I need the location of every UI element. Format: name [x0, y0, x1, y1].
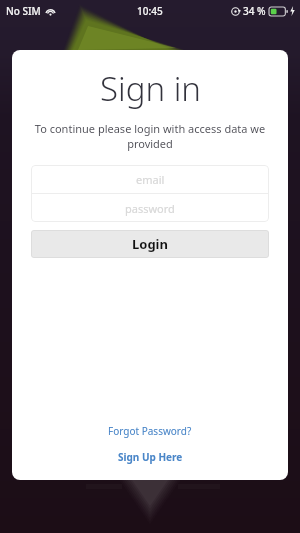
staticText: Sign Up Here: [118, 450, 183, 464]
button[interactable]: Forgot Password?: [98, 420, 202, 442]
button[interactable]: Login: [31, 230, 269, 258]
staticText: 34 %: [243, 4, 266, 18]
staticText: Forgot Password?: [108, 424, 192, 438]
staticText: password: [125, 201, 175, 216]
staticText: email: [136, 172, 165, 187]
button[interactable]: Sign Up Here: [108, 446, 193, 468]
staticText: No SIM: [6, 4, 41, 18]
staticText: Sign in: [100, 66, 201, 111]
staticText: 10:45: [137, 4, 163, 18]
button[interactable]: password: [31, 194, 269, 222]
staticText: Login: [132, 235, 168, 253]
staticText: To continue please login with access dat…: [26, 121, 274, 151]
button[interactable]: email: [31, 165, 269, 193]
